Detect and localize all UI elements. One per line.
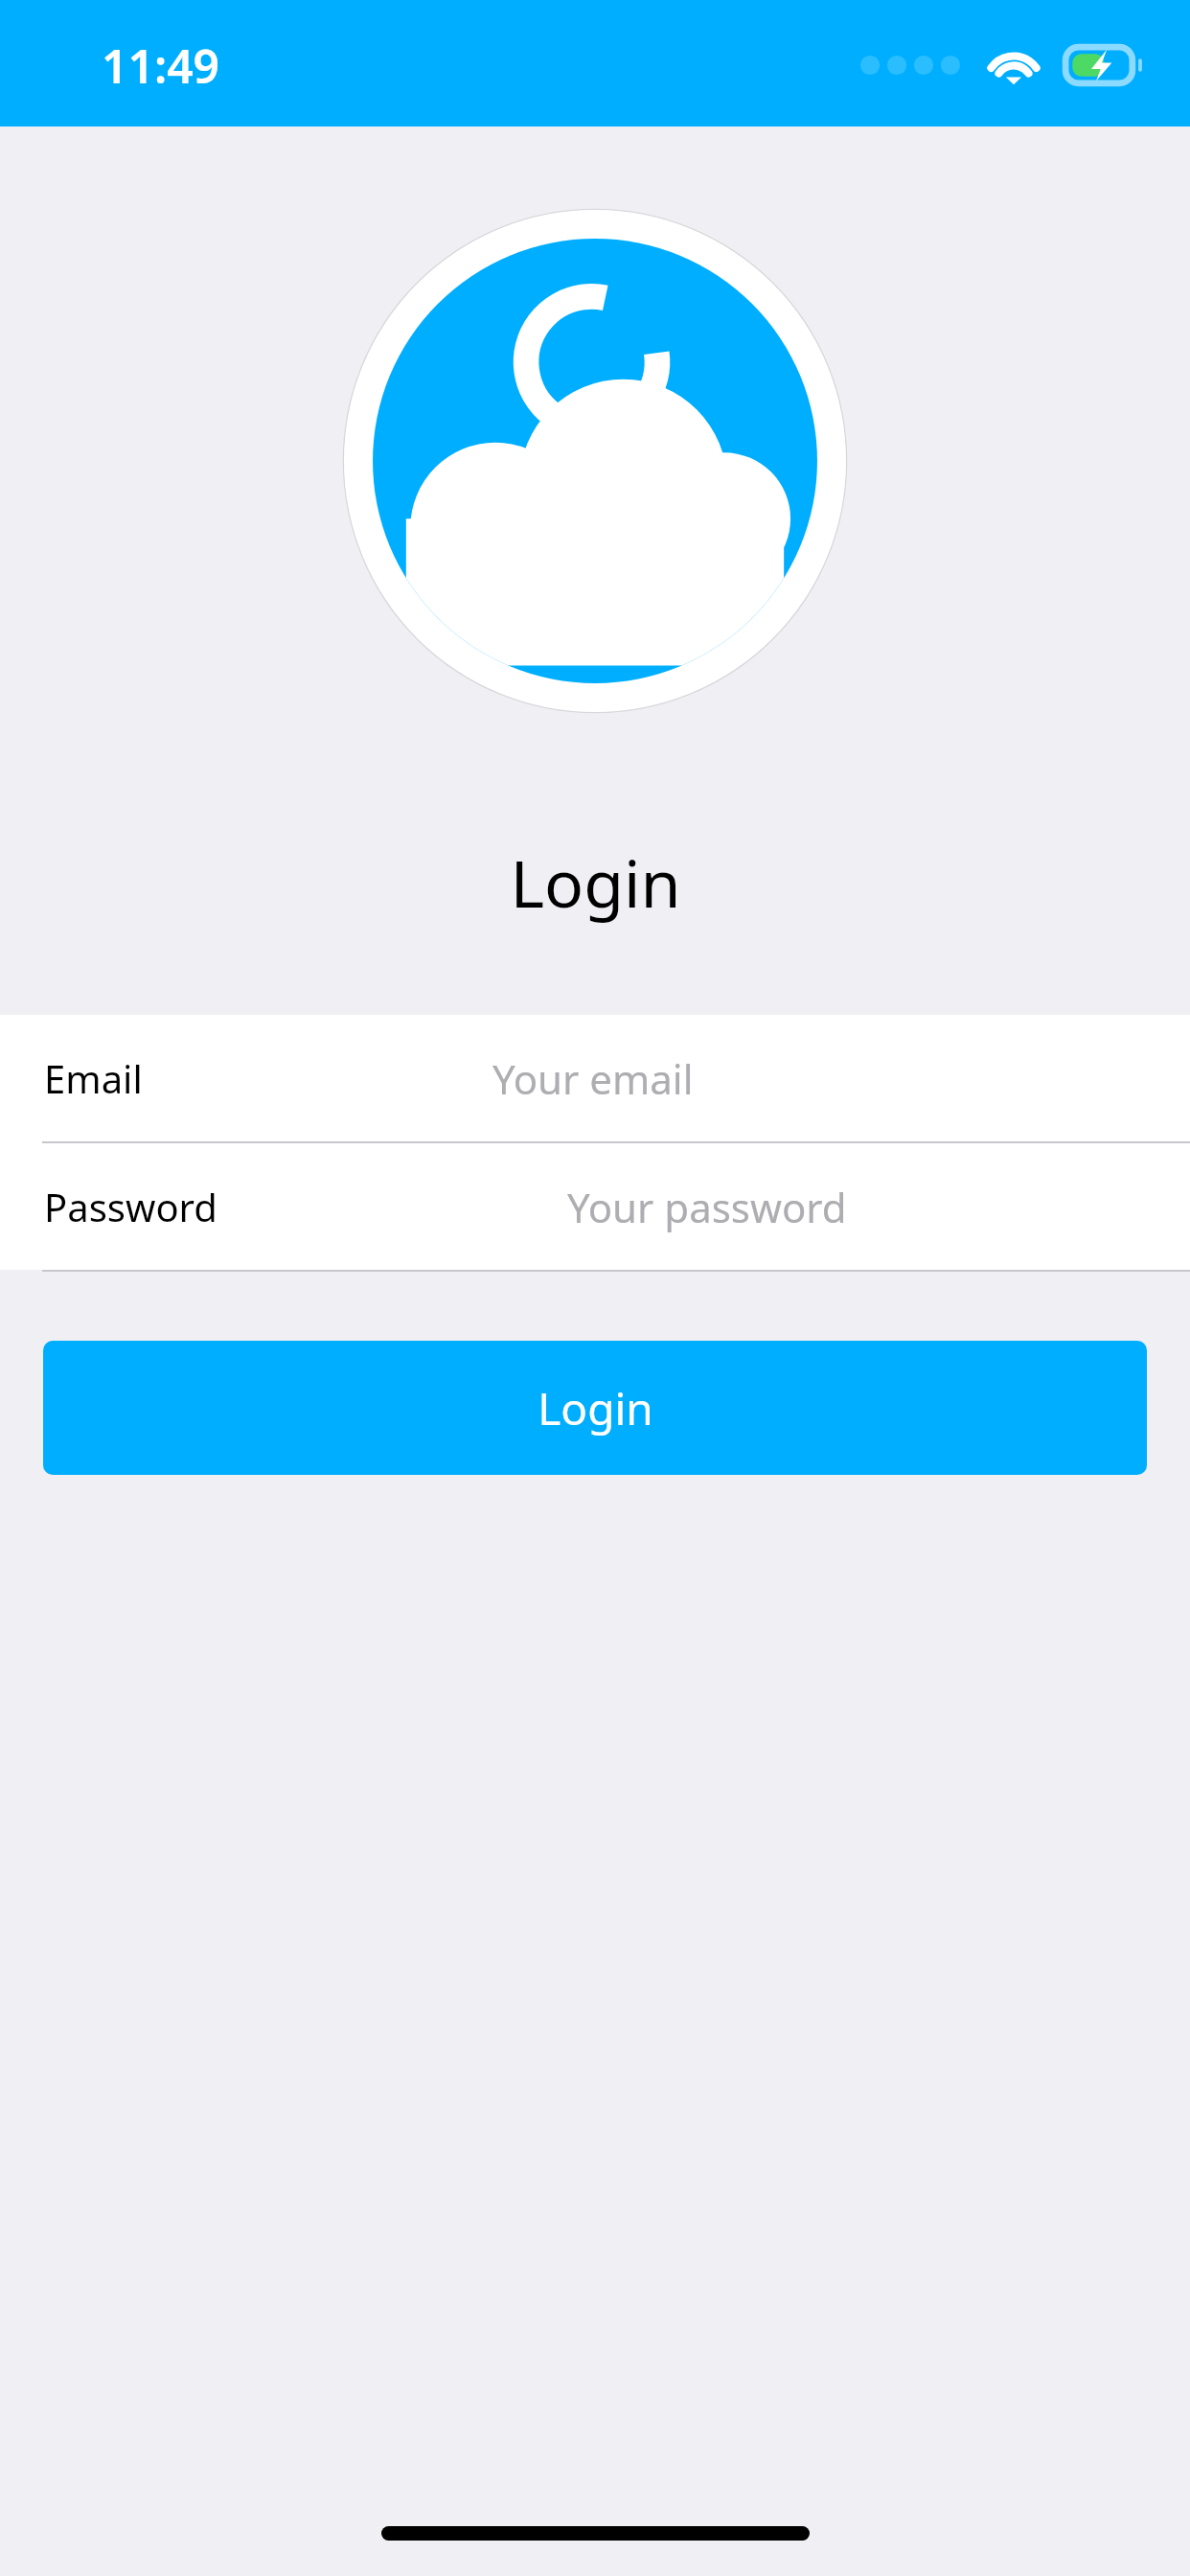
staticText: Your email	[492, 1051, 694, 1106]
staticText: Email	[44, 1052, 143, 1104]
button[interactable]: Login	[43, 1341, 1147, 1475]
staticText: 11:49	[102, 34, 220, 97]
staticText: Your password	[567, 1180, 847, 1234]
button[interactable]: Email	[0, 1015, 1190, 1141]
staticText: Login	[510, 838, 681, 927]
button[interactable]: Password	[0, 1143, 1190, 1270]
staticText: Password	[44, 1181, 217, 1232]
staticText: Login	[538, 1378, 653, 1438]
